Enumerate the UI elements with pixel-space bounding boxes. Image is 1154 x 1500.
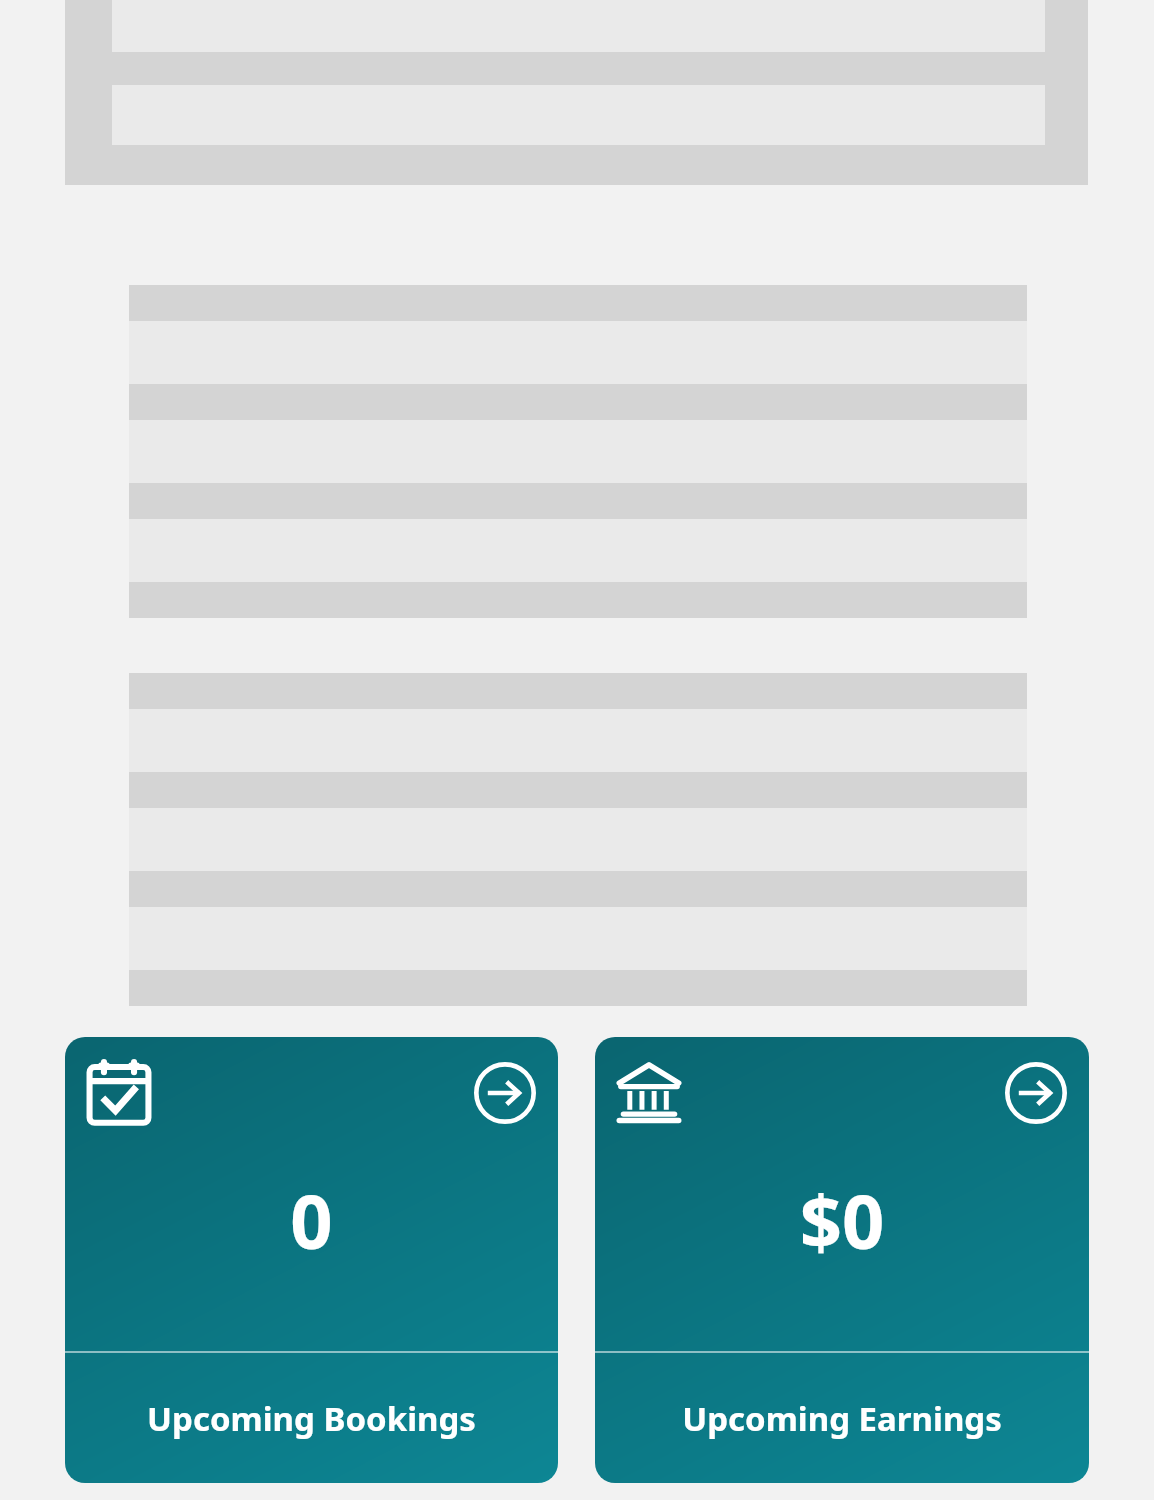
staticText: $0 xyxy=(595,1170,1089,1271)
other: Earnings xyxy=(617,1061,681,1125)
button[interactable]: Earnings xyxy=(595,1037,1089,1483)
other: Open Upcoming Bookings xyxy=(474,1062,536,1124)
button[interactable]: Bookings xyxy=(65,1037,558,1483)
staticText: Upcoming Bookings xyxy=(147,1396,476,1441)
other: Open Upcoming Earnings xyxy=(1005,1062,1067,1124)
other: Bookings xyxy=(87,1061,151,1125)
staticText: Upcoming Earnings xyxy=(682,1396,1002,1441)
staticText: 0 xyxy=(65,1170,558,1271)
